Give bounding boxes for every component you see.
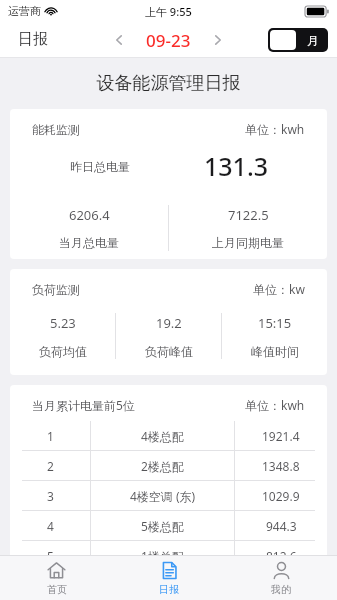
staticText: 5楼总配 — [141, 518, 184, 534]
staticText: 我的 — [271, 583, 291, 596]
button[interactable]: 3 — [10, 481, 327, 510]
staticText: 负荷均值 — [39, 344, 87, 359]
staticText: 944.3 — [266, 518, 297, 534]
staticText: 当月累计电量前5位 — [32, 397, 135, 413]
staticText: 1楼总配 — [141, 548, 184, 564]
button[interactable]: Next day — [205, 27, 231, 53]
staticText: 当月总电量 — [59, 235, 119, 250]
staticText: 1921.4 — [262, 428, 300, 444]
staticText: 单位：kwh — [245, 397, 305, 413]
staticText: 单位：kw — [253, 281, 305, 297]
staticText: 设备能源管理日报 — [0, 72, 337, 95]
button[interactable]: 4 — [10, 511, 327, 540]
staticText: 月 — [307, 33, 319, 48]
staticText: 单位：kwh — [245, 121, 305, 137]
staticText: 4楼空调 (东) — [130, 488, 196, 504]
staticText: 6206.4 — [69, 206, 110, 224]
button[interactable]: 我的 — [225, 556, 337, 600]
staticText: 负荷监测 — [32, 282, 80, 297]
staticText: 5.23 — [50, 314, 76, 332]
staticText: 负荷峰值 — [145, 344, 193, 359]
staticText: 5 — [47, 548, 54, 564]
button[interactable]: 月 — [268, 28, 328, 52]
staticText: 09-23 — [146, 29, 191, 52]
staticText: 上月同期电量 — [212, 235, 284, 250]
button[interactable]: 日报 — [113, 556, 225, 600]
staticText: 1348.8 — [262, 458, 300, 474]
staticText: 4楼总配 — [141, 428, 184, 444]
staticText: 2 — [47, 458, 54, 474]
staticText: 首页 — [47, 583, 67, 596]
staticText: 日报 — [159, 583, 179, 596]
staticText: 812.6 — [266, 548, 297, 564]
button[interactable]: 5 — [10, 541, 327, 570]
staticText: 1029.9 — [262, 488, 300, 504]
staticText: 131.3 — [204, 149, 269, 183]
button[interactable]: Previous day — [106, 27, 132, 53]
staticText: 3 — [47, 488, 54, 504]
staticText: 4 — [47, 518, 54, 534]
staticText: 1 — [47, 428, 54, 444]
staticText: 19.2 — [156, 314, 182, 332]
staticText: 15:15 — [258, 314, 292, 332]
staticText: 运营商 — [8, 4, 41, 18]
button[interactable]: 首页 — [0, 556, 113, 600]
staticText: 7122.5 — [228, 206, 269, 224]
staticText: 上午 9:55 — [145, 4, 192, 19]
button[interactable]: 1 — [10, 421, 327, 450]
staticText: 能耗监测 — [32, 122, 80, 137]
staticText: 峰值时间 — [251, 344, 299, 359]
staticText: 2楼总配 — [141, 458, 184, 474]
staticText: 昨日总电量 — [70, 159, 130, 174]
staticText: 日报 — [18, 30, 48, 49]
button[interactable]: 2 — [10, 451, 327, 480]
